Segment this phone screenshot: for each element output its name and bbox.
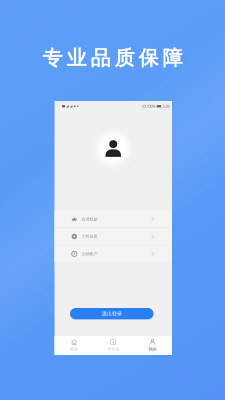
- staticText: 注销账户: [81, 251, 97, 256]
- button[interactable]: 注销账户: [54, 245, 172, 262]
- button[interactable]: 文件夹: [94, 336, 133, 355]
- staticText: 2:20: [162, 104, 169, 109]
- button[interactable]: 退出登录: [70, 308, 153, 319]
- button[interactable]: 会员权益: [54, 211, 172, 228]
- button[interactable]: 首页: [54, 336, 94, 355]
- staticText: 首页: [70, 347, 78, 352]
- button[interactable]: 个性设置: [54, 228, 172, 245]
- staticText: 个性设置: [81, 234, 97, 239]
- staticText: 会员权益: [81, 217, 97, 221]
- staticText: 退出登录: [102, 310, 122, 317]
- staticText: 我的: [148, 347, 156, 352]
- button[interactable]: 我的: [133, 336, 172, 355]
- staticText: 专业品质保障: [42, 46, 182, 70]
- staticText: 文件夹: [107, 347, 119, 352]
- staticText: 100%: [147, 104, 156, 109]
